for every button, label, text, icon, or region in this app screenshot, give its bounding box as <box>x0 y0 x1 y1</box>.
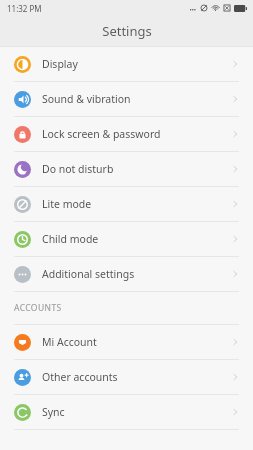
button[interactable]: Sync <box>0 395 253 429</box>
staticText: Lite mode <box>42 197 92 211</box>
staticText: Mi Account <box>42 335 97 349</box>
button[interactable]: Display <box>0 47 253 81</box>
button[interactable]: Sound & vibration <box>0 82 253 116</box>
staticText: Other accounts <box>42 370 118 384</box>
staticText: Sound & vibration <box>42 92 131 106</box>
button[interactable]: Lite mode <box>0 187 253 221</box>
staticText: Lock screen & password <box>42 127 161 141</box>
button[interactable]: Other accounts <box>0 360 253 394</box>
staticText: ACCOUNTS <box>14 302 62 314</box>
staticText: Display <box>42 57 78 71</box>
staticText: Do not disturb <box>42 162 114 176</box>
button[interactable]: Lock screen & password <box>0 117 253 151</box>
staticText: Child mode <box>42 232 99 246</box>
staticText: Settings <box>102 22 152 40</box>
staticText: Sync <box>42 405 65 419</box>
button[interactable]: Mi Account <box>0 325 253 359</box>
button[interactable]: Child mode <box>0 222 253 256</box>
staticText: 11:32 PM <box>7 3 42 14</box>
button[interactable]: Additional settings <box>0 257 253 291</box>
staticText: Additional settings <box>42 267 135 281</box>
button[interactable]: Do not disturb <box>0 152 253 186</box>
